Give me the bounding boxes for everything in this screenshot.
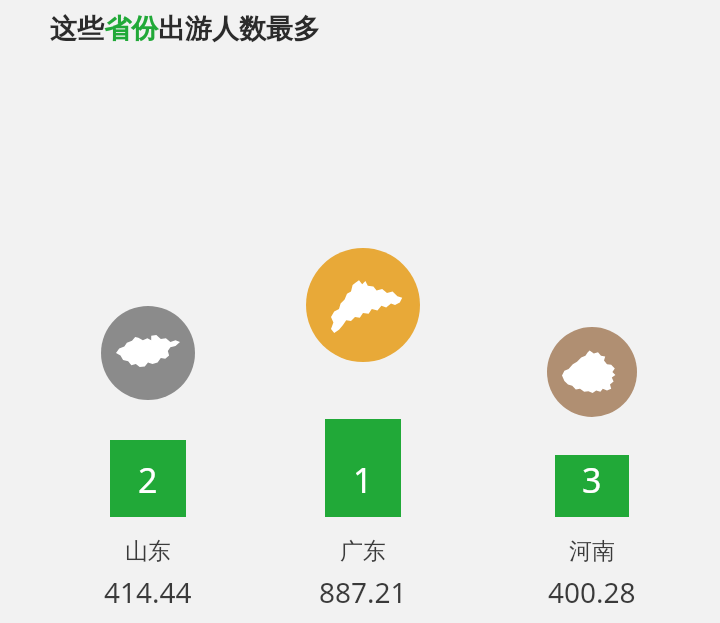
button[interactable]: 这些省份出游人数最多 排行榜	[0, 0, 720, 623]
